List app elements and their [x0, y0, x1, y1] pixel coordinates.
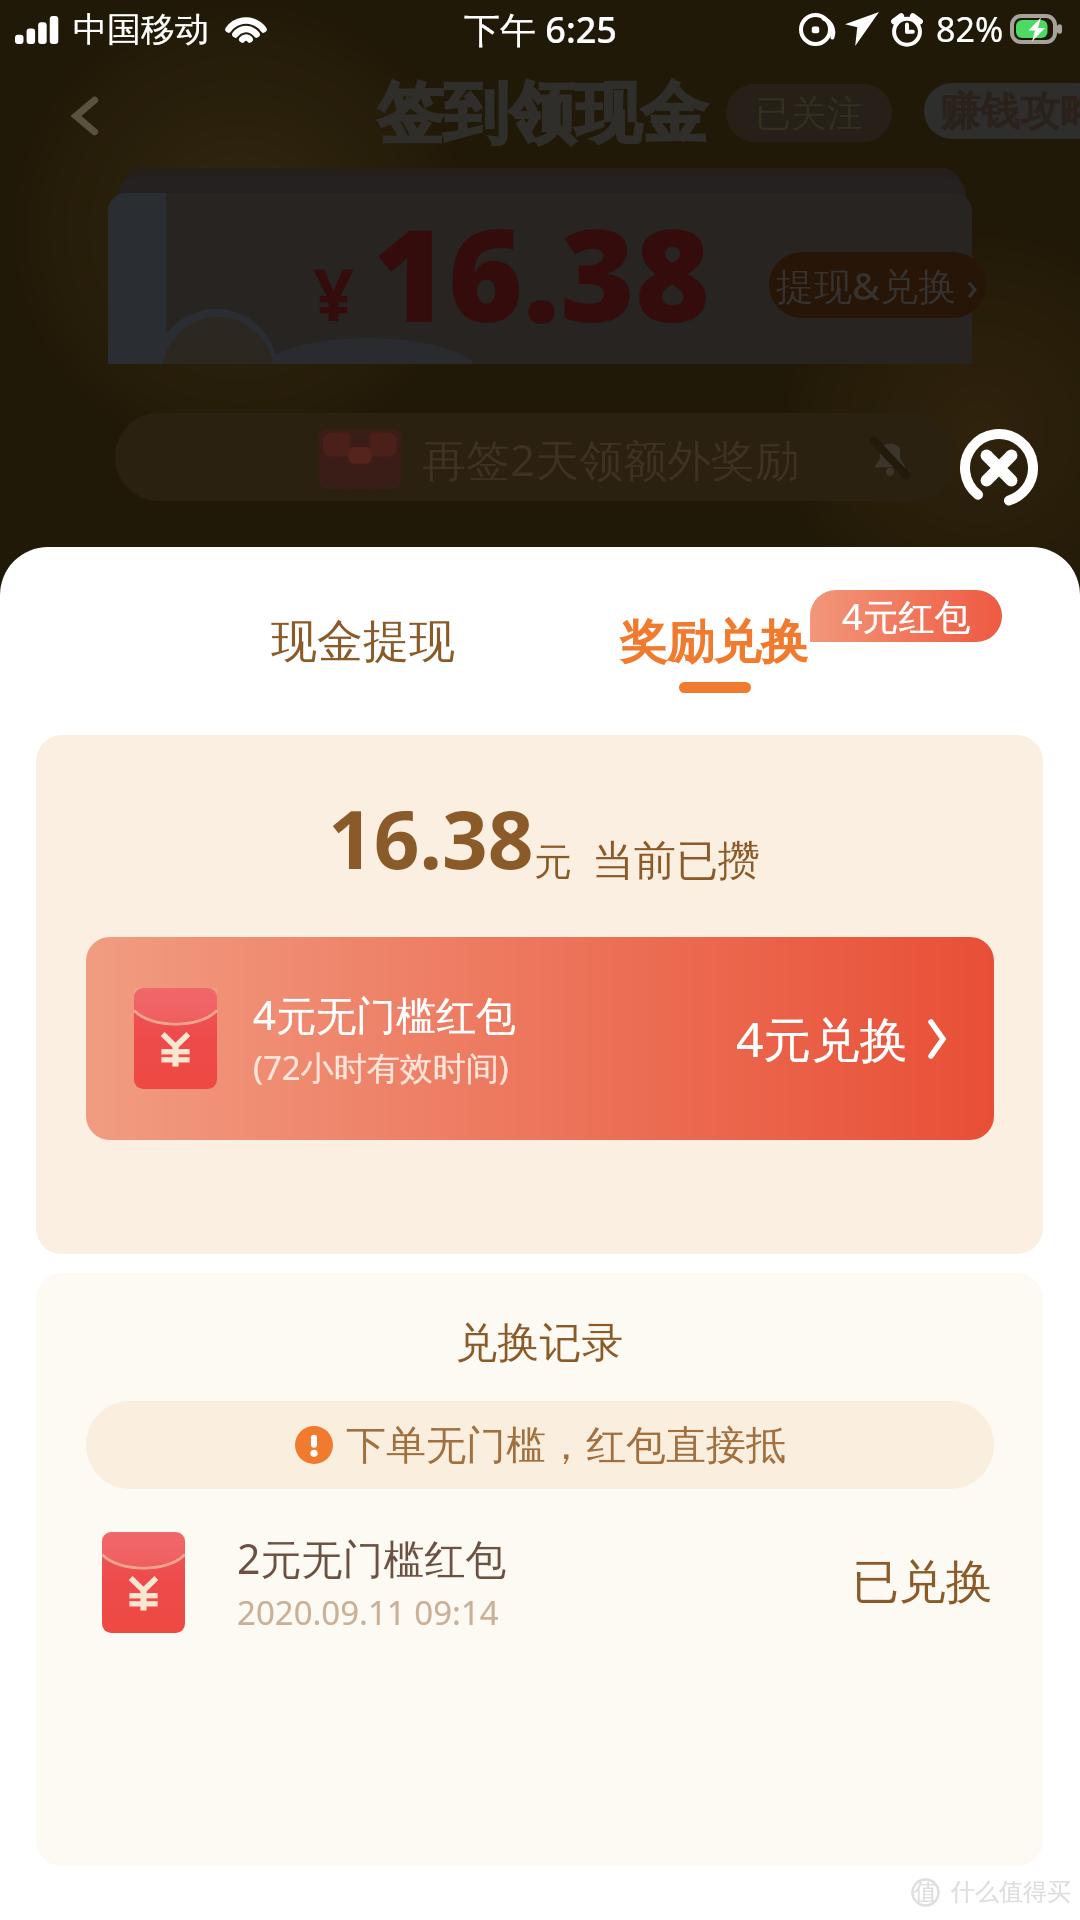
- staticText: 元: [534, 838, 572, 886]
- staticText: 2元无门槛红包: [237, 1530, 507, 1586]
- staticText: 2020.09.11 09:14: [237, 1590, 499, 1635]
- staticText: 16.38: [373, 193, 711, 356]
- button[interactable]: 提现&兑换 ›: [769, 252, 986, 318]
- staticText: 4元红包: [842, 592, 971, 641]
- staticText: 已兑换: [852, 1553, 993, 1612]
- button[interactable]: 现金提现: [247, 599, 479, 685]
- button[interactable]: 已关注: [726, 84, 892, 142]
- staticText: 82%: [936, 6, 1004, 52]
- staticText: 提现&兑换 ›: [776, 259, 979, 311]
- staticText: 兑换记录: [36, 1317, 1043, 1370]
- staticText: 现金提现: [271, 613, 455, 671]
- staticText: 再签2天领额外奖励: [422, 429, 800, 489]
- staticText: 当前已攒: [592, 835, 760, 888]
- staticText: 什么值得买: [951, 1877, 1071, 1907]
- staticText: 16.38: [328, 783, 534, 892]
- staticText: 签到领现金: [377, 72, 707, 155]
- staticText: 中国移动: [73, 8, 209, 51]
- staticText: 值: [914, 1878, 937, 1907]
- staticText: 下午 6:25: [464, 5, 617, 54]
- button[interactable]: 赚钱攻略: [924, 83, 1080, 139]
- staticText: ¥: [313, 244, 355, 342]
- button[interactable]: 再签2天领额外奖励: [115, 413, 956, 501]
- staticText: 4元兑换: [736, 1006, 908, 1072]
- button[interactable]: 4元无门槛红包: [86, 937, 994, 1140]
- button[interactable]: Close: [959, 428, 1039, 508]
- staticText: 奖励兑换: [620, 613, 808, 672]
- button[interactable]: 2元无门槛红包: [102, 1520, 993, 1645]
- button[interactable]: Back: [50, 80, 122, 152]
- staticText: 赚钱攻略: [940, 86, 1080, 136]
- staticText: 下单无门槛，红包直接抵: [346, 1420, 786, 1470]
- staticText: 已关注: [755, 91, 863, 136]
- button[interactable]: 奖励兑换: [596, 599, 832, 686]
- staticText: 4元无门槛红包: [253, 987, 516, 1042]
- staticText: (72小时有效时间): [253, 1045, 509, 1090]
